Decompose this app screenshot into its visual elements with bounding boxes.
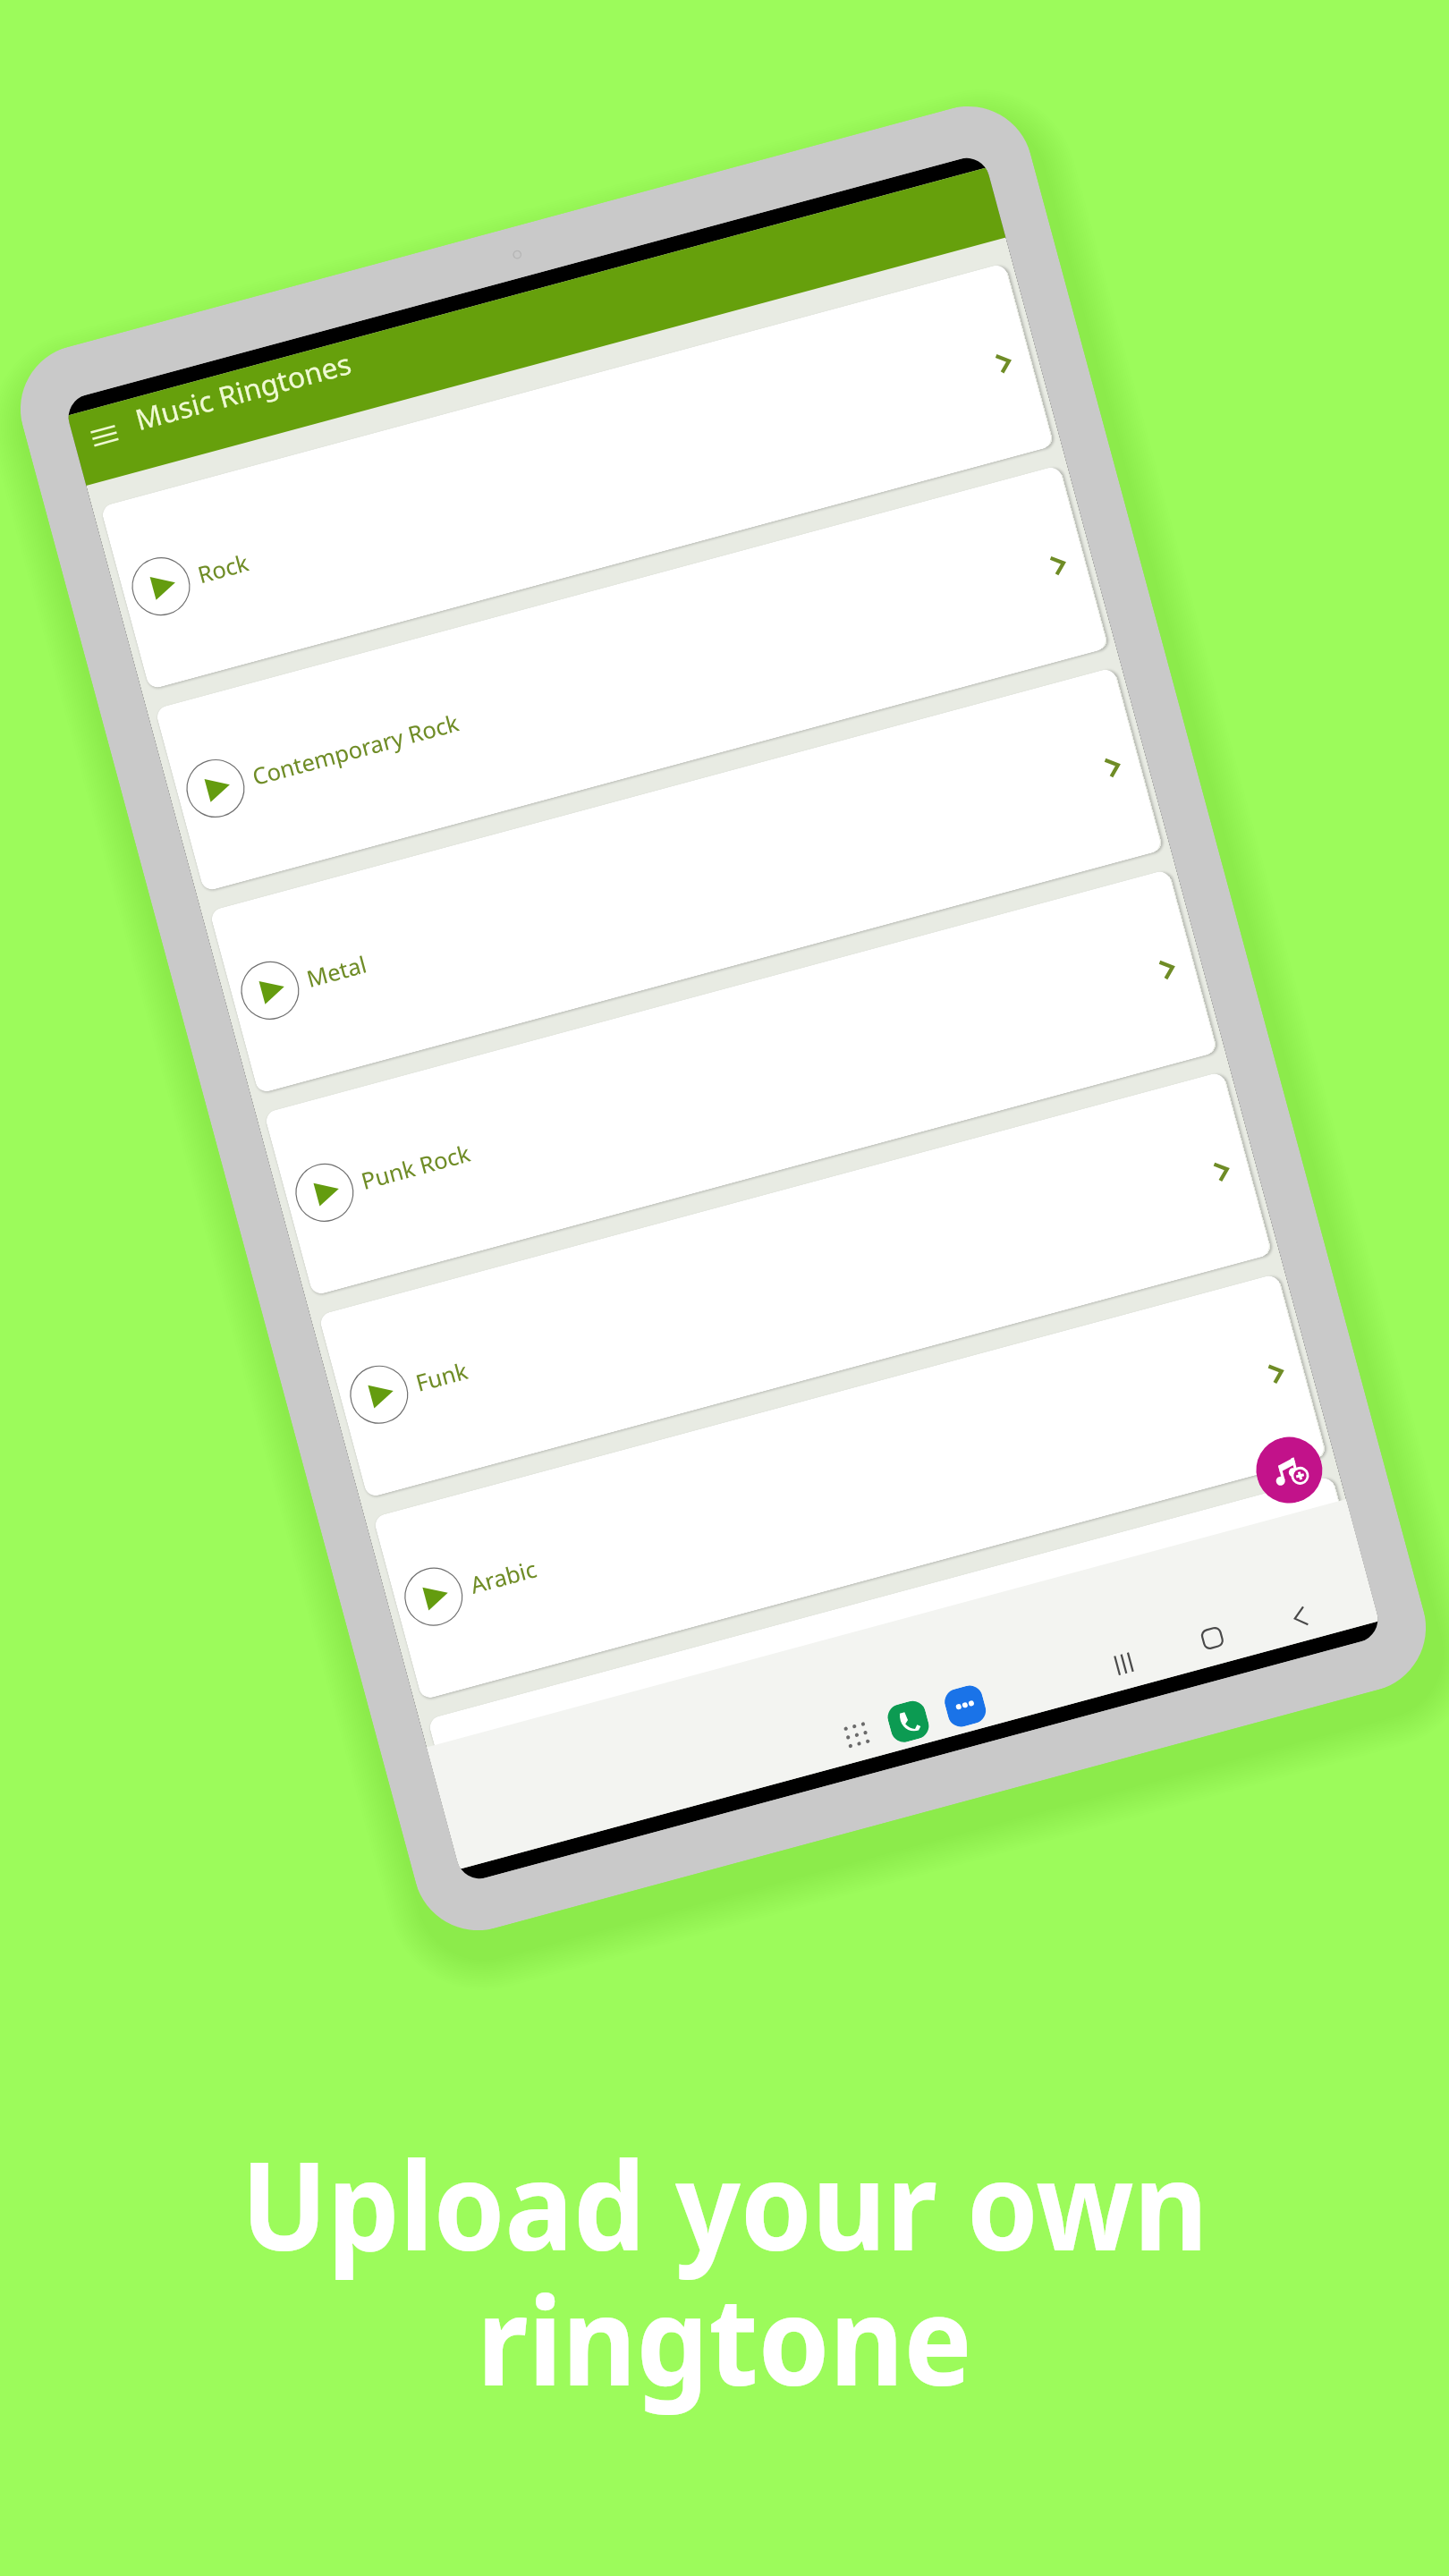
staticText: Metal [303,949,370,995]
button[interactable]: Play Arabic [398,1561,469,1632]
button[interactable]: Play Contemporary Rock [180,753,251,824]
button[interactable]: Play Funk [343,1359,415,1430]
staticText: Upload your own [241,2120,1208,2287]
button[interactable]: Add ringtone [1249,1430,1330,1511]
staticText: Rock [194,547,253,591]
button[interactable]: Play Punk Rock [264,869,1217,1296]
button[interactable]: Phone [885,1698,932,1745]
button[interactable]: Play Pop [427,1475,1369,1857]
button[interactable]: Play Funk [318,1071,1272,1498]
button[interactable]: Recents [1102,1642,1146,1686]
button[interactable]: Apps [838,1716,875,1754]
button[interactable]: Messages [942,1683,989,1730]
button[interactable]: Menu [85,417,124,455]
button[interactable]: Play Metal [234,955,306,1026]
button[interactable]: Back [1278,1595,1322,1639]
staticText: Punk Rock [358,1137,474,1197]
staticText: Music Ringtones [131,343,355,439]
staticText: ringtone [477,2255,972,2422]
button[interactable]: Play Metal [209,667,1163,1094]
button[interactable]: Play Contemporary Rock [155,465,1108,892]
button[interactable]: Home [1190,1616,1234,1660]
staticText: Arabic [467,1553,541,1601]
button[interactable]: Play Rock [125,551,197,622]
button[interactable]: Play Punk Rock [289,1157,360,1228]
staticText: Funk [412,1355,471,1399]
staticText: Contemporary Rock [249,707,462,793]
button[interactable]: Play Arabic [373,1273,1326,1700]
button[interactable]: Menu [67,168,1006,486]
button[interactable]: Play Rock [100,263,1054,690]
